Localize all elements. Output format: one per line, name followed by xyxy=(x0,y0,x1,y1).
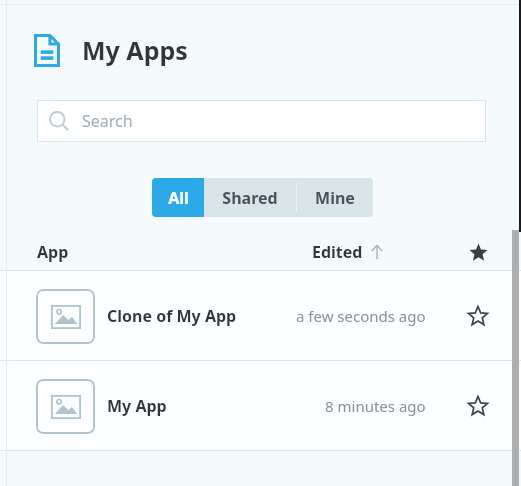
staticText: Shared xyxy=(222,187,278,209)
staticText: My Apps xyxy=(82,33,188,67)
staticText: Edited xyxy=(312,241,363,263)
staticText: Search xyxy=(82,110,133,132)
button[interactable]: All xyxy=(152,178,204,217)
button[interactable]: Edited xyxy=(312,241,385,263)
staticText: Mine xyxy=(315,187,355,209)
button[interactable]: Favourite xyxy=(462,300,494,332)
staticText: a few seconds ago xyxy=(296,306,426,326)
button[interactable]: Search xyxy=(37,100,486,142)
button[interactable]: App xyxy=(37,241,69,263)
staticText: 8 minutes ago xyxy=(325,396,426,416)
button[interactable]: Mine xyxy=(297,178,373,217)
button[interactable]: Clone of My App xyxy=(0,271,521,361)
staticText: All xyxy=(168,187,189,209)
button[interactable]: Sort by favourite xyxy=(463,237,493,267)
button[interactable]: Favourite xyxy=(462,390,494,422)
button[interactable]: My App xyxy=(0,361,521,451)
staticText: Clone of My App xyxy=(107,305,237,327)
staticText: My App xyxy=(107,395,167,417)
button[interactable]: Shared xyxy=(204,178,296,217)
